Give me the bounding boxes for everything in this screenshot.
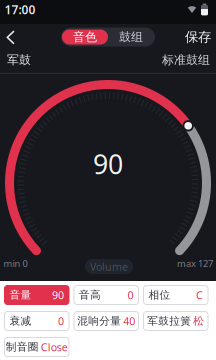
- button[interactable]: 音色: [62, 29, 108, 44]
- staticText: 相位: [148, 288, 170, 301]
- button[interactable]: 衰减: [4, 311, 69, 330]
- staticText: 0: [127, 288, 133, 302]
- button[interactable]: 鼓组: [108, 29, 154, 44]
- staticText: Close: [41, 340, 68, 354]
- staticText: 音色: [73, 30, 97, 44]
- button[interactable]: 相位: [143, 285, 208, 304]
- staticText: 混响分量: [77, 314, 121, 327]
- button[interactable]: 保存: [185, 29, 216, 45]
- staticText: max 127: [177, 257, 213, 270]
- staticText: 90: [93, 146, 123, 182]
- staticText: 音量: [9, 288, 31, 301]
- staticText: 军鼓: [7, 53, 31, 67]
- staticText: 标准鼓组: [162, 53, 210, 67]
- button[interactable]: 混响分量: [74, 311, 138, 330]
- staticText: 音高: [79, 288, 101, 301]
- staticText: 衰减: [9, 314, 31, 327]
- staticText: 40: [123, 314, 135, 328]
- staticText: 制音圈: [6, 340, 39, 353]
- button[interactable]: 音量: [4, 285, 69, 304]
- button[interactable]: Volume: [85, 259, 133, 274]
- button[interactable]: 军鼓拉簧: [143, 311, 208, 330]
- staticText: min 0: [3, 257, 27, 270]
- button[interactable]: 标准鼓组: [162, 53, 210, 67]
- button[interactable]: 制音圈: [4, 337, 69, 356]
- staticText: Volume: [90, 259, 128, 274]
- button[interactable]: Back: [0, 24, 21, 50]
- button[interactable]: 音高: [74, 285, 138, 304]
- staticText: 军鼓拉簧: [147, 314, 191, 327]
- staticText: 保存: [185, 29, 211, 45]
- staticText: 0: [58, 314, 64, 328]
- staticText: 17:00: [4, 1, 35, 17]
- staticText: C: [196, 288, 203, 302]
- staticText: 松: [193, 314, 204, 327]
- staticText: 鼓组: [119, 30, 143, 44]
- staticText: 90: [52, 288, 64, 302]
